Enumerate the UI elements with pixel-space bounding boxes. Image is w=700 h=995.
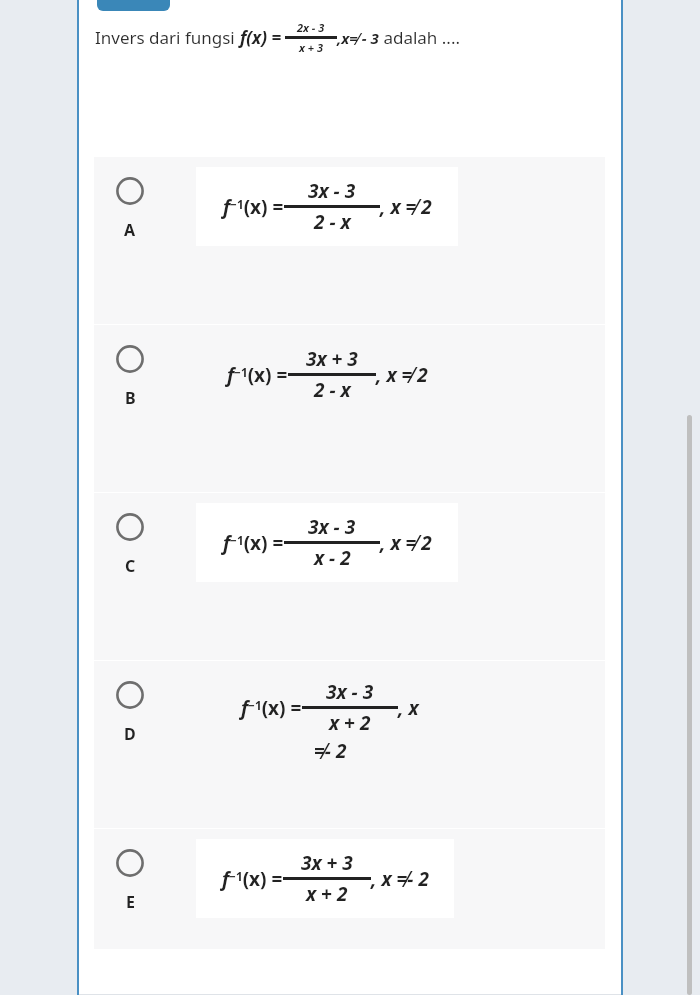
- button[interactable]: B: [94, 325, 605, 492]
- staticText: D: [124, 723, 136, 745]
- staticText: 2 − x: [314, 377, 351, 403]
- staticText: , x ≠− 2: [371, 866, 429, 892]
- staticText: 3x − 3: [308, 514, 356, 540]
- staticText: x + 3: [299, 40, 323, 55]
- staticText: , x: [398, 695, 419, 721]
- staticText: Invers dari fungsi: [95, 26, 240, 49]
- staticText: 2 − x: [314, 209, 351, 235]
- staticText: x + 2: [329, 710, 371, 736]
- staticText: f−1(x) =: [222, 866, 283, 892]
- staticText: f−1(x) =: [223, 194, 284, 220]
- staticText: f−1(x) =: [241, 695, 302, 721]
- button[interactable]: D: [94, 661, 605, 828]
- staticText: 3x + 3: [306, 346, 358, 372]
- staticText: f−1(x) =: [223, 530, 284, 556]
- staticText: f−1(x) =: [227, 362, 288, 388]
- staticText: 2x − 3: [297, 20, 325, 35]
- button[interactable]: E: [94, 829, 605, 949]
- staticText: E: [126, 891, 135, 913]
- staticText: ≠− 2: [314, 738, 347, 764]
- staticText: 3x − 3: [308, 178, 356, 204]
- staticText: ,x≠ − 3: [337, 28, 379, 48]
- staticText: x − 2: [314, 545, 351, 571]
- staticText: adalah ....: [379, 26, 461, 49]
- staticText: , x ≠ 2: [380, 530, 432, 556]
- staticText: , x ≠ 2: [376, 362, 428, 388]
- staticText: 3x + 3: [301, 850, 353, 876]
- staticText: f(x) =: [240, 26, 282, 49]
- staticText: , x ≠ 2: [380, 194, 432, 220]
- button[interactable]: A: [94, 157, 605, 324]
- staticText: 3x − 3: [326, 679, 374, 705]
- staticText: A: [124, 219, 136, 241]
- staticText: C: [125, 555, 136, 577]
- staticText: B: [125, 387, 136, 409]
- button[interactable]: C: [94, 493, 605, 660]
- staticText: x + 2: [306, 881, 348, 907]
- button[interactable]: [97, 0, 170, 11]
